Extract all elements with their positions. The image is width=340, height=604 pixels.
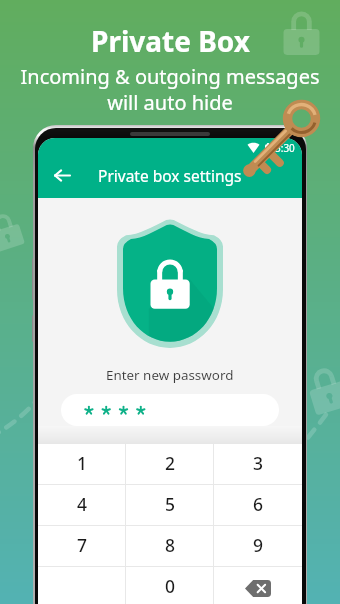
staticText: 6 <box>253 492 264 516</box>
other: Backspace <box>242 577 274 599</box>
button[interactable]: 7 <box>38 526 126 567</box>
button[interactable]: 8 <box>126 526 214 567</box>
button[interactable]: 6 <box>214 485 302 526</box>
button[interactable]: Backspace <box>214 567 302 604</box>
button[interactable]: 4 <box>38 485 126 526</box>
staticText: Private box settings <box>98 165 242 186</box>
button[interactable]: Back <box>44 157 80 193</box>
staticText: 3 <box>253 451 264 475</box>
staticText: Enter new password <box>106 366 234 384</box>
button[interactable]: 2 <box>126 444 214 485</box>
staticText: Incoming & outgoing messages will auto h… <box>20 63 320 116</box>
staticText: 4 <box>77 492 88 516</box>
staticText: Private Box <box>91 22 250 60</box>
staticText: 8 <box>165 533 176 557</box>
staticText: 5:30 <box>275 141 295 155</box>
staticText: 5 <box>165 492 176 516</box>
button[interactable]: 0 <box>126 567 214 604</box>
button[interactable]: 5 <box>126 485 214 526</box>
staticText: 7 <box>77 533 88 557</box>
button[interactable] <box>61 394 279 426</box>
staticText: 1 <box>77 451 88 475</box>
button[interactable]: 9 <box>214 526 302 567</box>
button[interactable]: 1 <box>38 444 126 485</box>
staticText: 0 <box>165 574 176 598</box>
staticText: 9 <box>253 533 264 557</box>
button[interactable]: 3 <box>214 444 302 485</box>
staticText: 2 <box>165 451 176 475</box>
